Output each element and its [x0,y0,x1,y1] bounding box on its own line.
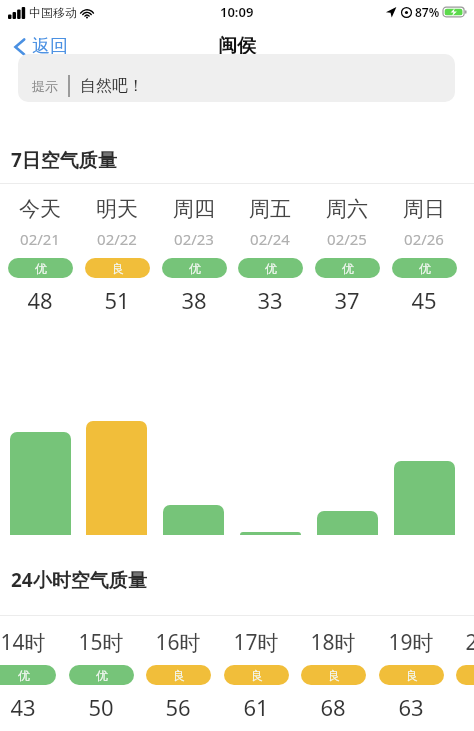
button[interactable]: 明天 [84,196,150,315]
staticText: 今天 [19,196,61,222]
staticText: 优 [18,668,30,683]
other: 空气质量优 [392,258,457,278]
button[interactable]: 20时 [455,628,474,722]
staticText: 48 [27,285,53,315]
staticText: 50 [88,692,114,722]
staticText: 闽侯 [218,34,256,58]
staticText: 02/24 [250,229,290,249]
button[interactable]: 周五 [237,196,303,315]
staticText: 61 [243,692,269,722]
staticText: 02/25 [327,229,367,249]
other: 空气质量良 [379,665,444,685]
other: 空气质量良 [301,665,366,685]
button[interactable]: 17时 [223,628,289,722]
staticText: 15时 [78,628,124,657]
staticText: 38 [181,285,207,315]
staticText: 7日空气质量 [11,147,117,173]
staticText: 自然吧！ [80,76,144,96]
staticText: 19时 [388,628,434,657]
staticText: 02/23 [174,229,214,249]
staticText: 返回 [32,35,68,58]
staticText: 56 [165,692,191,722]
staticText: 提示 [32,78,58,94]
staticText: 优 [35,261,47,276]
staticText: 17时 [233,628,279,657]
staticText: 51 [104,285,130,315]
staticText: 10:09 [220,3,254,21]
staticText: 优 [419,261,431,276]
other: 空气质量优 [0,665,56,685]
staticText: 87% [415,4,440,20]
staticText: 中国移动 [29,5,77,20]
button[interactable]: 周日 [391,196,457,315]
button[interactable]: 16时 [145,628,211,722]
staticText: 良 [328,668,340,683]
staticText: 16时 [155,628,201,657]
button[interactable]: 返回 [0,29,78,64]
staticText: 优 [96,668,108,683]
staticText: 周六 [326,196,368,222]
staticText: 02/26 [404,229,444,249]
staticText: 45 [411,285,437,315]
staticText: 20时 [465,628,474,657]
button[interactable]: 周四 [161,196,227,315]
other: 空气质量良 [85,258,150,278]
staticText: 周日 [403,196,445,222]
other: 空气质量优 [315,258,380,278]
staticText: 37 [334,285,360,315]
staticText: 周五 [249,196,291,222]
staticText: 18时 [310,628,356,657]
staticText: 02/22 [97,229,137,249]
button[interactable]: 提示 [18,54,455,102]
staticText: 优 [342,261,354,276]
button[interactable]: 14时 [0,628,56,722]
staticText: 68 [320,692,346,722]
button[interactable]: 19时 [378,628,444,722]
staticText: 良 [173,668,185,683]
staticText: 明天 [96,196,138,222]
button[interactable]: 18时 [300,628,366,722]
button[interactable]: 15时 [68,628,134,722]
staticText: 63 [398,692,424,722]
staticText: 33 [257,285,283,315]
other: 空气质量良 [146,665,211,685]
staticText: 优 [265,261,277,276]
staticText: 良 [112,261,124,276]
other: 空气质量良 [224,665,289,685]
button[interactable]: 今天 [7,196,73,315]
staticText: 周四 [173,196,215,222]
other: 空气质量良 [456,665,474,685]
button[interactable]: 周六 [314,196,380,315]
staticText: 优 [189,261,201,276]
staticText: 14时 [0,628,46,657]
other: 空气质量优 [8,258,73,278]
staticText: 24小时空气质量 [11,567,147,593]
other: 空气质量优 [238,258,303,278]
staticText: 良 [251,668,263,683]
other: 空气质量优 [69,665,134,685]
other: 空气质量优 [162,258,227,278]
staticText: 02/21 [20,229,60,249]
staticText: 良 [406,668,418,683]
staticText: 43 [10,692,36,722]
